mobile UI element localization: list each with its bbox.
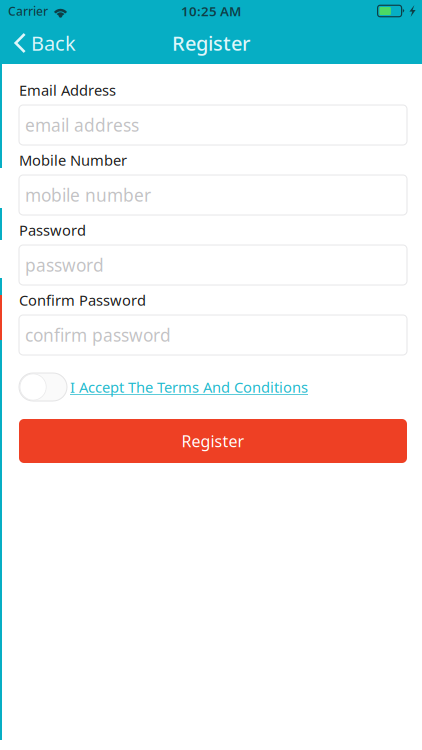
staticText: Mobile Number xyxy=(19,150,127,170)
button[interactable]: email address xyxy=(19,105,407,145)
staticText: Back xyxy=(31,30,76,56)
button[interactable]: mobile number xyxy=(19,175,407,215)
staticText: Password xyxy=(19,220,86,240)
staticText: mobile number xyxy=(25,183,151,206)
staticText: confirm password xyxy=(25,323,171,346)
staticText: I Accept The Terms And Conditions xyxy=(70,377,308,397)
button[interactable]: confirm password xyxy=(19,315,407,355)
staticText: Register xyxy=(172,30,250,56)
button[interactable]: password xyxy=(19,245,407,285)
staticText: 10:25 AM xyxy=(181,2,241,20)
button[interactable]: Register xyxy=(19,419,407,463)
button[interactable]: Accept the terms and conditions xyxy=(19,373,67,401)
staticText: Confirm Password xyxy=(19,290,146,310)
button[interactable]: Back xyxy=(0,22,85,64)
staticText: password xyxy=(25,253,104,276)
staticText: Register xyxy=(181,430,244,452)
button[interactable]: I Accept The Terms And Conditions xyxy=(70,377,308,397)
staticText: email address xyxy=(25,113,139,136)
staticText: Carrier xyxy=(8,3,48,19)
staticText: Email Address xyxy=(19,80,116,100)
